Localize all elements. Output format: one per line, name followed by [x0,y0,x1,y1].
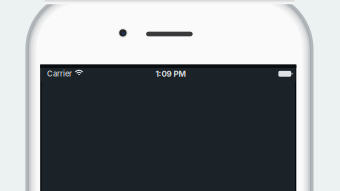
staticText: Carrier [47,69,72,78]
staticText: 1:09 PM [155,69,185,79]
